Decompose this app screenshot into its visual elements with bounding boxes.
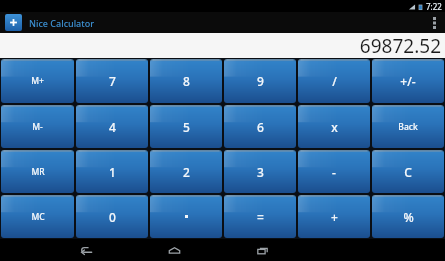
button[interactable]: Back bbox=[372, 105, 444, 148]
button[interactable]: 69872.52 bbox=[0, 33, 445, 58]
button[interactable]: C bbox=[372, 150, 444, 193]
button[interactable]: + bbox=[298, 195, 370, 238]
staticText: + bbox=[331, 209, 338, 225]
button[interactable]: MC bbox=[1, 195, 74, 238]
staticText: M- bbox=[32, 121, 43, 133]
button[interactable]: M+ bbox=[1, 59, 74, 103]
button[interactable]: More options bbox=[423, 12, 445, 33]
staticText: 9 bbox=[257, 73, 264, 89]
button[interactable]: 3 bbox=[224, 150, 296, 193]
button[interactable]: +/- bbox=[372, 59, 444, 103]
staticText: Back bbox=[398, 121, 418, 133]
button[interactable]: x bbox=[298, 105, 370, 148]
button[interactable]: M- bbox=[1, 105, 74, 148]
staticText: Nice Calculator bbox=[29, 17, 95, 29]
staticText: / bbox=[332, 73, 337, 89]
button[interactable]: MR bbox=[1, 150, 74, 193]
button[interactable]: % bbox=[372, 195, 444, 238]
button[interactable]: Back bbox=[70, 239, 102, 261]
staticText: C bbox=[404, 164, 412, 180]
staticText: 8 bbox=[183, 73, 190, 89]
staticText: M+ bbox=[31, 75, 44, 87]
button[interactable]: - bbox=[298, 150, 370, 193]
staticText: % bbox=[403, 209, 414, 225]
staticText: 0 bbox=[109, 209, 116, 225]
staticText: 5 bbox=[183, 119, 190, 135]
staticText: 4 bbox=[109, 119, 116, 135]
button[interactable]: = bbox=[224, 195, 296, 238]
staticText: 2 bbox=[183, 164, 190, 180]
staticText: 69872.52 bbox=[359, 33, 441, 58]
button[interactable]: 4 bbox=[76, 105, 148, 148]
button[interactable]: 0 bbox=[76, 195, 148, 238]
button[interactable]: 9 bbox=[224, 59, 296, 103]
button[interactable]: 5 bbox=[150, 105, 222, 148]
button[interactable]: 6 bbox=[224, 105, 296, 148]
staticText: 6 bbox=[257, 119, 264, 135]
button[interactable]: / bbox=[298, 59, 370, 103]
staticText: - bbox=[332, 164, 336, 180]
staticText: = bbox=[257, 209, 264, 225]
staticText: 1 bbox=[109, 164, 116, 180]
staticText: MC bbox=[31, 211, 45, 223]
staticText: x bbox=[331, 119, 338, 135]
button[interactable]: 7 bbox=[76, 59, 148, 103]
button[interactable]: 1 bbox=[76, 150, 148, 193]
staticText: +/- bbox=[400, 73, 416, 89]
button[interactable] bbox=[150, 195, 222, 238]
button[interactable]: 8 bbox=[150, 59, 222, 103]
button[interactable]: 2 bbox=[150, 150, 222, 193]
button[interactable]: Recent apps bbox=[246, 239, 278, 261]
button[interactable]: Home bbox=[158, 239, 190, 261]
staticText: 7:22 bbox=[426, 1, 442, 12]
staticText: 3 bbox=[257, 164, 264, 180]
staticText: MR bbox=[31, 166, 45, 178]
staticText: 7 bbox=[109, 73, 116, 89]
